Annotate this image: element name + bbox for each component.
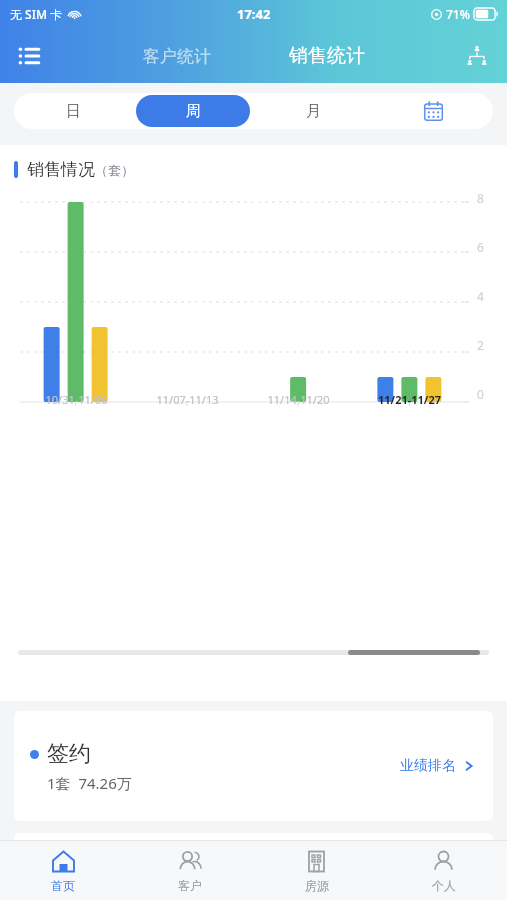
staticText: 日 (66, 102, 81, 121)
button[interactable]: 认购 (14, 833, 493, 900)
staticText: 认购 (47, 840, 91, 868)
staticText: 销售统计 (289, 44, 365, 68)
staticText: 17:42 (237, 5, 271, 23)
staticText: 1套 74.26万 (47, 773, 132, 793)
staticText: （套） (95, 162, 134, 178)
staticText: 签约 (47, 740, 91, 768)
staticText: 6 (477, 239, 484, 255)
staticText: 11/14-11/20 (267, 392, 330, 407)
button[interactable]: 业绩排名 (394, 852, 481, 882)
button[interactable]: 个人 (380, 841, 507, 900)
staticText: 10/31-11/06 (45, 392, 108, 407)
staticText: 业绩排名 (400, 757, 456, 775)
staticText: 月 (306, 102, 321, 121)
staticText: 0 (477, 386, 484, 402)
staticText: 销售情况 (27, 159, 95, 180)
button[interactable]: 客户统计 (125, 40, 229, 73)
staticText: 11/07-11/13 (156, 392, 219, 407)
staticText: 房源 (305, 878, 329, 893)
button[interactable]: 月 (256, 95, 370, 127)
button[interactable]: 房源 (253, 841, 380, 900)
staticText: 4 (477, 288, 484, 304)
staticText: 1套 74.26万 (47, 873, 132, 893)
button[interactable]: 首页 (0, 841, 126, 900)
staticText: 个人 (432, 878, 456, 893)
staticText: 业绩排名 (400, 858, 456, 876)
button[interactable]: 业绩排名 (394, 751, 481, 781)
button[interactable]: 周 (136, 95, 250, 127)
button[interactable]: 客户 (126, 841, 253, 900)
staticText: 2 (477, 337, 484, 353)
button[interactable]: 销售统计 (271, 38, 383, 74)
staticText: 客户 (178, 878, 202, 893)
button[interactable]: 签约 (14, 711, 493, 821)
button[interactable]: 日 (17, 95, 130, 127)
staticText: 客户统计 (143, 46, 211, 67)
staticText: 11/21-11/27 (378, 392, 441, 407)
button[interactable]: 菜单 (8, 34, 52, 78)
staticText: 8 (477, 190, 484, 206)
staticText: 周 (186, 102, 201, 121)
button[interactable]: 选择日期 (373, 93, 493, 129)
staticText: 无 SIM 卡 (10, 6, 63, 22)
staticText: 首页 (51, 878, 75, 893)
staticText: 71% (446, 6, 470, 22)
button[interactable]: 团队组织 (455, 34, 499, 78)
